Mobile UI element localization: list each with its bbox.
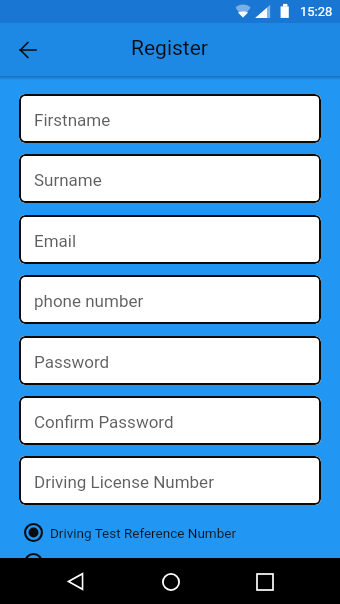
- button[interactable]: Recents: [244, 561, 285, 602]
- button[interactable]: Email: [19, 215, 321, 264]
- staticText: Firstname: [34, 110, 111, 130]
- staticText: Password: [34, 352, 110, 372]
- staticText: Register: [131, 36, 208, 61]
- staticText: Driving Test Reference Number: [50, 525, 236, 541]
- staticText: 15:28: [300, 4, 333, 19]
- staticText: Provisional Licence Reference Number: [50, 555, 282, 571]
- button[interactable]: Home: [150, 561, 191, 602]
- button[interactable]: Provisional Licence Reference Number: [24, 553, 328, 572]
- button[interactable]: phone number: [19, 275, 321, 324]
- button[interactable]: Back: [55, 561, 96, 602]
- staticText: Driving License Number: [34, 472, 214, 492]
- button[interactable]: Driving Test Reference Number: [24, 523, 328, 542]
- button[interactable]: Driving License Number: [19, 456, 321, 505]
- button[interactable]: Firstname: [19, 94, 321, 143]
- staticText: Email: [34, 231, 77, 251]
- staticText: Surname: [34, 170, 102, 190]
- button[interactable]: Confirm Password: [19, 396, 321, 445]
- staticText: phone number: [34, 291, 144, 311]
- staticText: Confirm Password: [34, 412, 174, 432]
- button[interactable]: Surname: [19, 154, 321, 203]
- button[interactable]: Back: [7, 30, 47, 70]
- button[interactable]: Password: [19, 336, 321, 385]
